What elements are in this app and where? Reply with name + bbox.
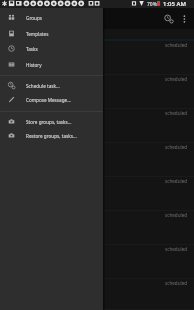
staticText: 70% [147, 1, 157, 8]
staticText: scheduled [165, 110, 188, 116]
button[interactable]: scheduled [0, 211, 194, 245]
staticText: Store groups, tasks... [26, 119, 72, 125]
staticText: scheduled [165, 280, 188, 286]
button[interactable]: Store groups, tasks... [0, 114, 103, 129]
button[interactable]: scheduled [0, 109, 194, 143]
button[interactable]: Tasks [0, 41, 103, 56]
button[interactable]: scheduled [0, 177, 194, 211]
staticText: scheduled [165, 246, 188, 252]
staticText: Restore groups, tasks... [26, 133, 77, 139]
button[interactable]: History [0, 57, 103, 72]
staticText: Groups [26, 15, 42, 21]
staticText: Compose Message... [26, 97, 71, 103]
button[interactable]: More options [178, 9, 191, 29]
staticText: History [26, 62, 42, 68]
staticText: Tasks [26, 46, 38, 52]
staticText: scheduled [165, 178, 188, 184]
staticText: scheduled [165, 212, 188, 218]
button[interactable]: scheduled [0, 75, 194, 109]
staticText: scheduled [165, 42, 188, 48]
button[interactable]: Restore groups, tasks... [0, 128, 103, 143]
staticText: scheduled [165, 144, 188, 150]
button[interactable]: scheduled [0, 245, 194, 279]
staticText: 1:05 AM [163, 0, 186, 8]
button[interactable]: scheduled [0, 143, 194, 177]
button[interactable]: Templates [0, 26, 103, 41]
button[interactable]: scheduled [0, 41, 194, 75]
button[interactable]: Groups [0, 10, 103, 25]
button[interactable]: Search [160, 9, 175, 29]
button[interactable]: scheduled [0, 279, 194, 310]
button[interactable]: Schedule task... [0, 78, 103, 93]
staticText: Templates [26, 31, 49, 37]
staticText: Schedule task... [26, 83, 60, 89]
staticText: scheduled [165, 76, 188, 82]
button[interactable]: Compose Message... [0, 92, 103, 107]
